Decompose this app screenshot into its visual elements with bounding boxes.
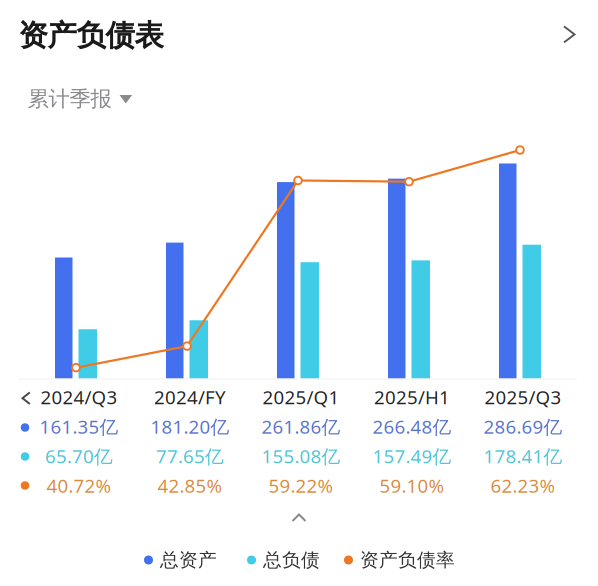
staticText: 2025/H1 <box>374 385 450 409</box>
button[interactable]: Previous period <box>14 387 36 409</box>
staticText: 总负债 <box>263 548 320 571</box>
button[interactable]: 资产负债率 <box>344 548 455 571</box>
staticText: 261.86亿 <box>261 414 340 439</box>
staticText: 178.41亿 <box>483 444 562 468</box>
staticText: 2025/Q1 <box>262 385 339 409</box>
staticText: 2025/Q3 <box>484 385 561 409</box>
staticText: 77.65亿 <box>156 444 224 468</box>
staticText: 157.49亿 <box>372 444 451 468</box>
button[interactable]: 累计季报 <box>27 86 132 112</box>
staticText: 155.08亿 <box>261 444 340 468</box>
staticText: 资产负债率 <box>360 548 455 571</box>
staticText: 40.72% <box>46 473 111 498</box>
button[interactable]: 2025/Q1 <box>262 385 339 409</box>
button[interactable]: 2024/FY <box>154 385 226 409</box>
button[interactable]: 总负债 <box>247 548 320 571</box>
staticText: 59.22% <box>268 473 333 498</box>
button[interactable]: Collapse <box>286 508 311 528</box>
staticText: 2024/FY <box>154 385 226 409</box>
staticText: 161.35亿 <box>39 414 118 439</box>
staticText: 62.23% <box>490 473 555 498</box>
staticText: 65.70亿 <box>45 444 113 468</box>
staticText: 总资产 <box>160 548 217 571</box>
staticText: 181.20亿 <box>150 414 229 439</box>
button[interactable]: 资产负债表 <box>18 17 163 53</box>
staticText: 累计季报 <box>27 86 111 112</box>
staticText: 266.48亿 <box>372 414 451 439</box>
staticText: 42.85% <box>157 473 222 498</box>
staticText: 资产负债表 <box>18 17 163 53</box>
staticText: 2024/Q3 <box>40 385 117 409</box>
staticText: 59.10% <box>379 473 444 498</box>
button[interactable]: 总资产 <box>144 548 217 571</box>
staticText: 286.69亿 <box>483 414 562 439</box>
button[interactable]: More <box>551 16 587 52</box>
button[interactable]: 2025/H1 <box>374 385 450 409</box>
button[interactable]: 2025/Q3 <box>484 385 561 409</box>
button[interactable]: 2024/Q3 <box>40 385 117 409</box>
